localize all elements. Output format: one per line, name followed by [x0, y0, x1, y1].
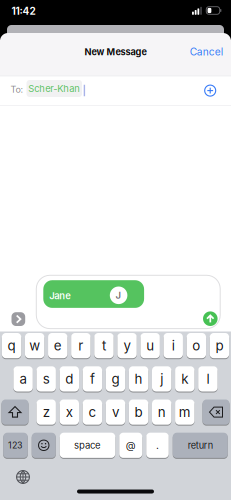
button[interactable]: . — [146, 432, 169, 458]
staticText: . — [156, 439, 159, 451]
staticText: y — [123, 337, 130, 354]
button[interactable]: o — [187, 332, 206, 359]
staticText: J — [116, 289, 122, 301]
button[interactable]: s — [36, 366, 56, 392]
staticText: u — [146, 337, 154, 354]
button[interactable]: n — [152, 399, 171, 425]
staticText: d — [65, 371, 73, 387]
button[interactable]: return — [173, 432, 228, 458]
staticText: i — [172, 337, 175, 354]
button[interactable]: f — [83, 366, 102, 392]
button[interactable]: c — [83, 399, 102, 425]
button[interactable]: h — [129, 366, 148, 392]
staticText: @ — [126, 439, 136, 451]
staticText: h — [135, 371, 143, 387]
button[interactable]: Add Contact — [205, 85, 216, 96]
button[interactable]: y — [117, 332, 137, 359]
button[interactable]: x — [60, 399, 79, 425]
staticText: return — [188, 440, 213, 451]
button[interactable]: m — [175, 399, 194, 425]
button[interactable]: space — [60, 432, 115, 458]
button[interactable]: q — [2, 332, 21, 359]
staticText: space — [74, 439, 101, 451]
button[interactable]: d — [60, 366, 79, 392]
button[interactable]: v — [106, 399, 125, 425]
button[interactable]: k — [175, 366, 194, 392]
button[interactable]: Delete — [202, 399, 229, 425]
button[interactable]: e — [48, 332, 67, 359]
button[interactable]: w — [25, 332, 44, 359]
staticText: w — [29, 337, 40, 354]
staticText: j — [160, 371, 163, 387]
staticText: o — [192, 337, 200, 354]
button[interactable]: r — [71, 332, 90, 359]
staticText: v — [112, 404, 119, 420]
staticText: m — [179, 404, 191, 420]
staticText: b — [135, 404, 143, 420]
staticText: f — [90, 371, 95, 387]
button[interactable]: g — [106, 366, 125, 392]
button[interactable]: Emoji — [32, 432, 56, 458]
button[interactable]: i — [163, 332, 183, 359]
button[interactable]: l — [198, 366, 218, 392]
button[interactable]: p — [210, 332, 229, 359]
staticText: New Message — [84, 46, 146, 57]
staticText: r — [78, 337, 83, 354]
staticText: Cancel — [190, 46, 223, 58]
staticText: 123 — [8, 440, 23, 451]
button[interactable]: Scher-Khan — [26, 80, 82, 97]
staticText: k — [181, 371, 188, 387]
button[interactable]: j — [152, 366, 171, 392]
staticText: n — [158, 404, 166, 420]
staticText: p — [215, 337, 223, 354]
staticText: t — [102, 337, 106, 354]
staticText: 11:42 — [11, 5, 35, 17]
button[interactable]: Shift — [1, 399, 28, 425]
staticText: e — [54, 337, 62, 354]
button[interactable]: t — [94, 332, 114, 359]
staticText: l — [206, 371, 209, 387]
button[interactable]: u — [140, 332, 160, 359]
staticText: a — [20, 371, 27, 387]
button[interactable]: Cancel — [190, 46, 223, 58]
button[interactable]: z — [36, 399, 56, 425]
staticText: s — [43, 371, 50, 387]
button[interactable]: Expand apps — [11, 312, 25, 326]
button[interactable]: a — [13, 366, 33, 392]
staticText: q — [7, 337, 15, 354]
button[interactable]: 123 — [3, 432, 28, 458]
staticText: x — [66, 404, 73, 420]
staticText: g — [111, 371, 119, 387]
button[interactable]: Next keyboard — [16, 470, 30, 484]
staticText: Jane — [49, 290, 71, 302]
button[interactable]: @ — [119, 432, 142, 458]
staticText: To: — [10, 84, 23, 95]
staticText: Scher-Khan — [28, 83, 80, 94]
staticText: c — [88, 404, 96, 420]
button[interactable]: Send — [203, 311, 218, 326]
button[interactable]: b — [129, 399, 148, 425]
staticText: z — [43, 404, 50, 420]
